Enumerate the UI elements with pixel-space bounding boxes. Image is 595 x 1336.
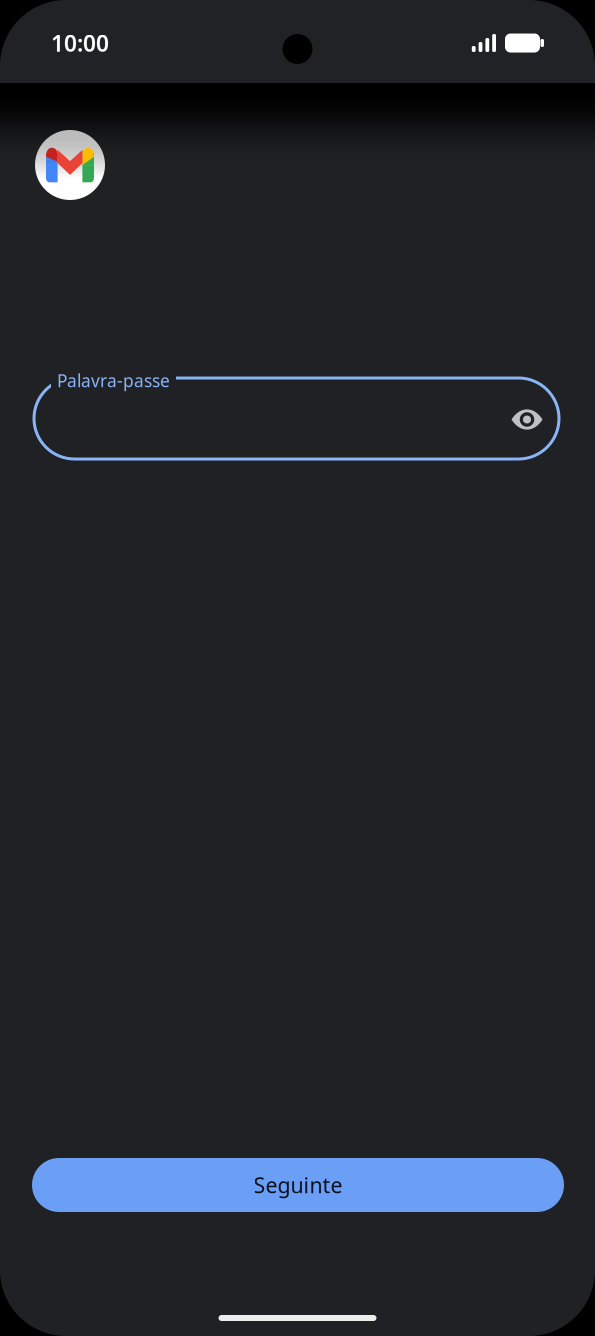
staticText: Seguinte (253, 1171, 342, 1199)
button[interactable]: Palavra-passe (34, 378, 559, 459)
button[interactable]: Seguinte (32, 1158, 564, 1212)
button[interactable]: Mostrar palavra-passe (501, 393, 553, 445)
staticText: Palavra-passe (57, 369, 170, 392)
staticText: 10:00 (51, 28, 109, 58)
